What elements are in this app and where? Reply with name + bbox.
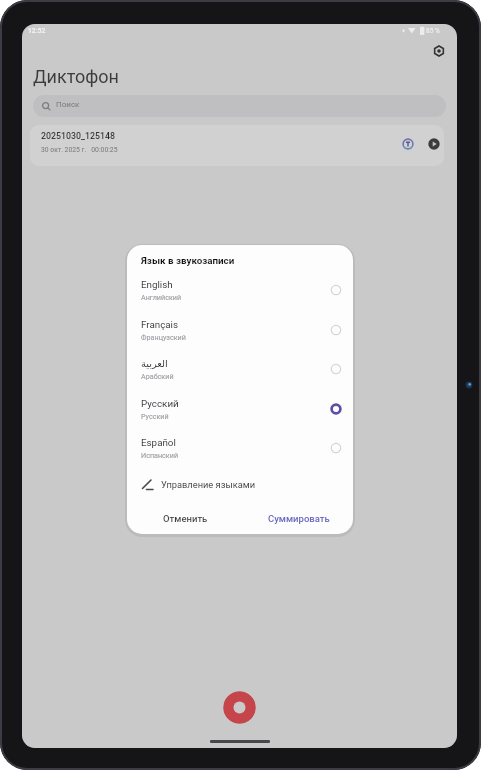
staticText: العربية (141, 358, 168, 369)
button[interactable] (428, 138, 440, 150)
button[interactable]: Отменить (147, 508, 223, 528)
staticText: 30 окт. 2025 г. 00:00:25 (41, 146, 118, 154)
staticText: Диктофон (33, 66, 119, 87)
button[interactable]: Français (127, 313, 353, 352)
button[interactable] (223, 691, 256, 724)
staticText: Арабский (141, 372, 174, 380)
button[interactable]: Суммировать (255, 508, 343, 528)
staticText: 12:52 (28, 27, 46, 35)
staticText: Español (141, 437, 176, 448)
staticText: Суммировать (268, 513, 330, 524)
staticText: Отменить (163, 513, 208, 524)
button[interactable]: العربية (127, 352, 353, 391)
staticText: Испанский (141, 451, 179, 459)
staticText: Французский (141, 333, 186, 341)
staticText: Язык в звукозаписи (141, 255, 235, 266)
staticText: Français (141, 319, 179, 330)
button[interactable]: Поиск (33, 95, 446, 117)
staticText: 20251030_125148 (41, 131, 115, 141)
button[interactable] (402, 138, 414, 150)
staticText: Управление языками (161, 479, 255, 490)
button[interactable] (432, 44, 446, 58)
button[interactable]: 20251030_125148 (30, 125, 444, 166)
staticText: Русский (141, 412, 169, 420)
staticText: 85 % (426, 27, 440, 35)
button[interactable]: Español (127, 431, 353, 470)
button[interactable]: English (127, 273, 353, 312)
button[interactable]: Русский (127, 392, 353, 431)
staticText: Русский (141, 398, 179, 409)
staticText: Поиск (56, 100, 80, 109)
staticText: Английский (141, 293, 182, 301)
staticText: English (141, 279, 173, 290)
button[interactable]: Управление языками (127, 473, 353, 495)
